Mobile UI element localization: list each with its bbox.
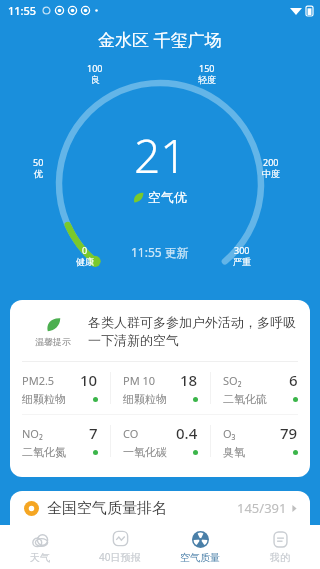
staticText: 二氧化硫: [223, 392, 267, 406]
staticText: 全国空气质量排名: [47, 499, 167, 518]
staticText: 7: [89, 423, 98, 443]
staticText: 空气优: [148, 189, 187, 205]
staticText: 严重: [233, 256, 251, 267]
staticText: 天气: [30, 551, 50, 564]
staticText: 空气质量: [180, 551, 220, 564]
staticText: 11:55: [8, 3, 37, 18]
staticText: 健康: [76, 256, 94, 267]
staticText: SO₂: [223, 373, 242, 388]
button[interactable]: CO: [111, 415, 210, 467]
button[interactable]: 我的: [240, 525, 320, 569]
staticText: 6: [289, 370, 298, 390]
staticText: 细颗粒物: [22, 392, 66, 406]
staticText: 21: [134, 124, 187, 187]
button[interactable]: SO₂: [211, 362, 310, 414]
button[interactable]: 空气质量: [160, 525, 240, 569]
staticText: 18: [180, 370, 198, 390]
staticText: 300: [234, 244, 250, 256]
button[interactable]: 天气: [0, 525, 80, 569]
staticText: NO₂: [22, 426, 43, 441]
staticText: 40日预报: [99, 550, 141, 564]
staticText: 150: [199, 62, 215, 74]
button[interactable]: 40日预报: [80, 525, 160, 569]
staticText: 中度: [262, 168, 280, 179]
staticText: 50: [33, 156, 44, 168]
staticText: 各类人群可多参加户外活动，多呼吸一下清新的空气: [88, 314, 296, 349]
staticText: 良: [91, 74, 100, 85]
staticText: PM 10: [123, 373, 156, 388]
staticText: 79: [280, 423, 298, 443]
button[interactable]: NO₂: [10, 415, 110, 467]
staticText: O₃: [223, 426, 236, 441]
staticText: 优: [34, 168, 43, 179]
staticText: 100: [87, 62, 103, 74]
staticText: 0: [82, 244, 88, 256]
staticText: CO: [123, 426, 139, 441]
button[interactable]: 温馨提示: [10, 300, 310, 361]
staticText: 200: [263, 156, 279, 168]
staticText: 金水区 千玺广场: [98, 28, 222, 51]
button[interactable]: 全国空气质量排名: [10, 491, 310, 525]
button[interactable]: PM2.5: [10, 362, 110, 414]
button[interactable]: PM 10: [111, 362, 210, 414]
button[interactable]: O₃: [211, 415, 310, 467]
staticText: 温馨提示: [35, 336, 71, 347]
staticText: 二氧化氮: [22, 445, 66, 459]
staticText: 我的: [270, 551, 290, 564]
staticText: PM2.5: [22, 373, 55, 388]
staticText: 细颗粒物: [123, 392, 167, 406]
staticText: 10: [80, 370, 98, 390]
staticText: 一氧化碳: [123, 445, 167, 459]
staticText: 轻度: [198, 74, 216, 85]
staticText: 臭氧: [223, 445, 245, 459]
staticText: 145/391: [237, 499, 287, 517]
staticText: 0.4: [176, 423, 198, 443]
staticText: 11:55 更新: [131, 244, 189, 260]
